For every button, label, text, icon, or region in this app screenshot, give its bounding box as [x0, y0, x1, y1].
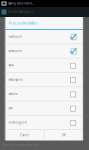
button[interactable]: Cancel	[5, 130, 44, 140]
staticText: OK	[62, 133, 66, 137]
button[interactable]: aww	[5, 59, 83, 73]
staticText: Free subreddits	[8, 20, 37, 26]
staticText: wallpapers	[8, 78, 22, 81]
staticText: aww	[8, 63, 13, 67]
staticText: rabbits	[8, 92, 17, 96]
button[interactable]: rabbits	[5, 87, 83, 101]
staticText: cats	[8, 106, 12, 110]
staticText: earthporn	[8, 35, 22, 38]
button[interactable]: OK	[45, 130, 83, 140]
button[interactable]: spaceporn	[5, 44, 83, 59]
staticText: Enter your own subreddit	[3, 143, 39, 147]
button[interactable]: climbingporn	[5, 116, 83, 130]
staticText: Reddit Wallpapers	[8, 10, 33, 14]
button[interactable]: cats	[5, 101, 83, 116]
button[interactable]: wallpapers	[5, 73, 83, 87]
button[interactable]: earthporn	[5, 30, 83, 44]
staticText: climbingporn	[8, 121, 27, 124]
staticText: Saving screenshot…	[8, 2, 34, 5]
staticText: spaceporn	[8, 49, 22, 53]
staticText: Cancel	[20, 133, 29, 137]
